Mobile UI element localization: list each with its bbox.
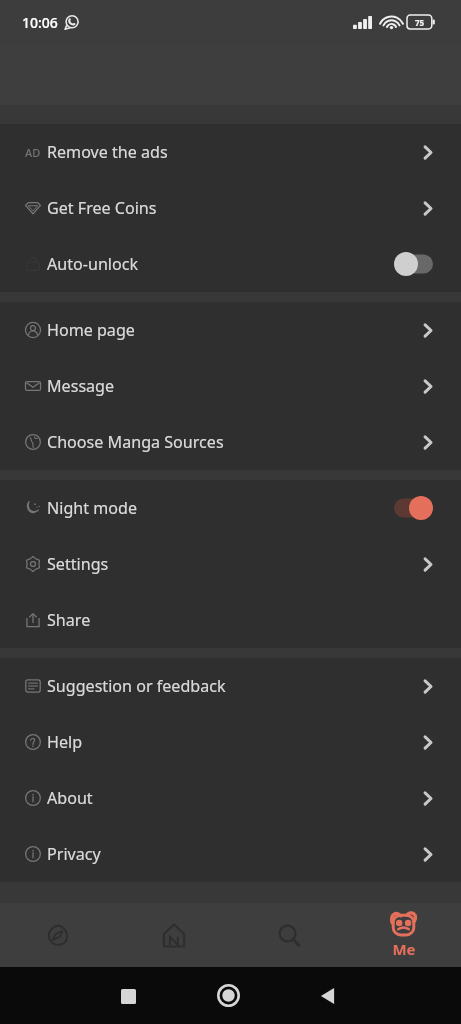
staticText: Message bbox=[47, 375, 115, 397]
staticText: AD bbox=[25, 145, 41, 160]
button[interactable]: Me bbox=[346, 903, 461, 967]
button[interactable]: About bbox=[0, 770, 461, 826]
button[interactable]: Toggle off bbox=[394, 252, 433, 276]
staticText: Home page bbox=[47, 319, 135, 341]
button[interactable]: Privacy bbox=[0, 826, 461, 882]
staticText: Me bbox=[392, 939, 416, 959]
staticText: Auto-unlock bbox=[47, 253, 139, 275]
staticText: Share bbox=[47, 609, 91, 631]
button[interactable]: Suggestion or feedback bbox=[0, 658, 461, 714]
staticText: Remove the ads bbox=[47, 141, 168, 163]
button[interactable]: Toggle on bbox=[394, 496, 433, 520]
button[interactable]: Back bbox=[307, 976, 347, 1016]
button[interactable]: Help bbox=[0, 714, 461, 770]
button[interactable]: AD bbox=[0, 124, 461, 180]
staticText: Help bbox=[47, 731, 83, 753]
staticText: Choose Manga Sources bbox=[47, 431, 224, 453]
staticText: Suggestion or feedback bbox=[47, 675, 226, 697]
button[interactable]: Choose Manga Sources bbox=[0, 414, 461, 470]
button[interactable]: Recents bbox=[108, 976, 148, 1016]
button[interactable]: Auto-unlock bbox=[0, 236, 461, 292]
staticText: 10:06 bbox=[22, 13, 58, 32]
staticText: Settings bbox=[47, 553, 109, 575]
button[interactable]: Settings bbox=[0, 536, 461, 592]
button[interactable]: Night mode bbox=[0, 480, 461, 536]
staticText: Privacy bbox=[47, 843, 101, 865]
button[interactable]: Message bbox=[0, 358, 461, 414]
button[interactable]: Get Free Coins bbox=[0, 180, 461, 236]
button[interactable]: Share bbox=[0, 592, 461, 648]
button[interactable]: Home bbox=[208, 975, 248, 1015]
staticText: 75 bbox=[415, 17, 425, 28]
button[interactable]: Home page bbox=[0, 302, 461, 358]
staticText: Get Free Coins bbox=[47, 197, 157, 219]
staticText: Night mode bbox=[47, 497, 137, 519]
staticText: About bbox=[47, 787, 93, 809]
